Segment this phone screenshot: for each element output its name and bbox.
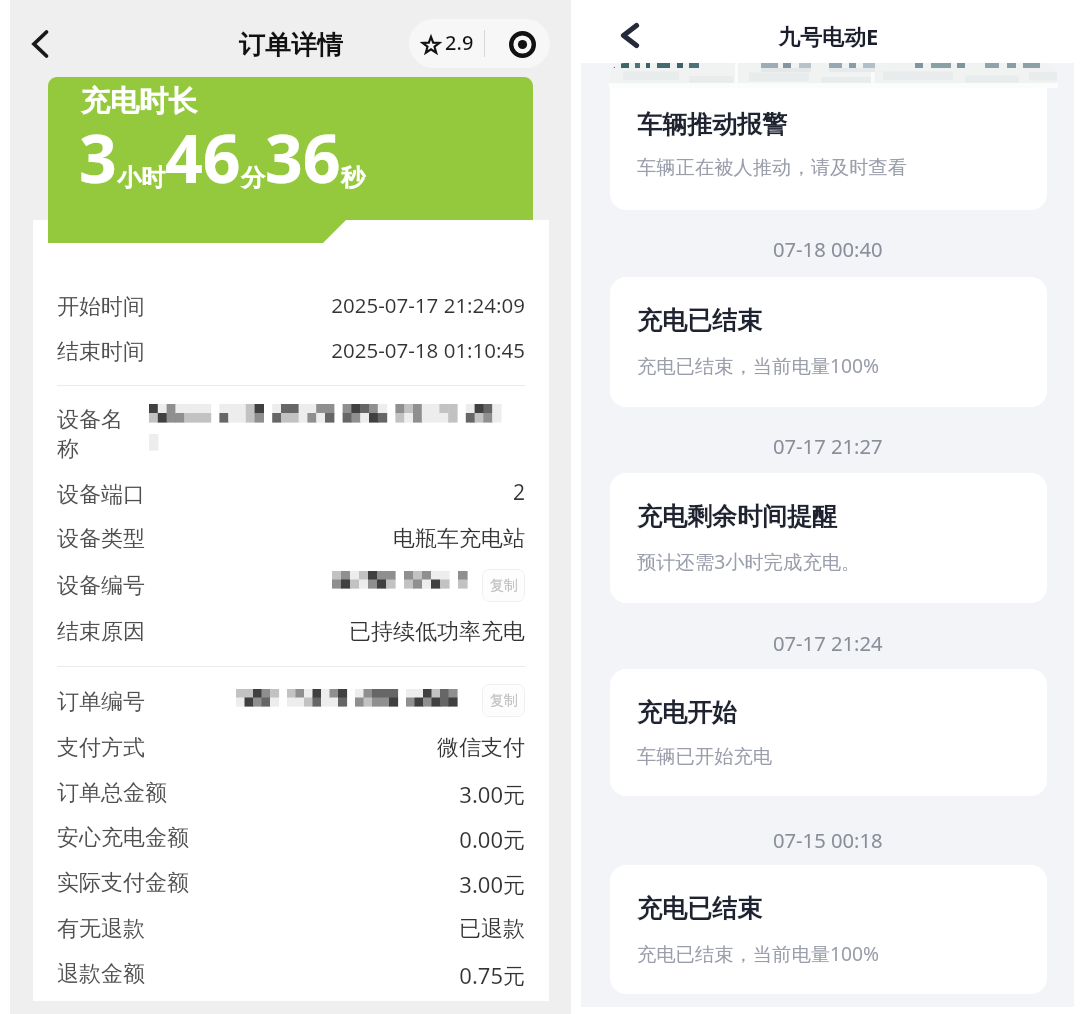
staticText: 预计还需3小时完成充电。: [637, 548, 861, 574]
staticText: 订单编号: [57, 688, 145, 716]
staticText: 07-17 21:27: [773, 432, 883, 460]
staticText: 07-17 21:24: [773, 629, 883, 657]
staticText: 充电时长: [81, 83, 197, 120]
staticText: 微信支付: [105, 734, 525, 762]
staticText: 复制: [490, 692, 518, 710]
staticText: 设备编号: [57, 572, 145, 600]
button[interactable]: [610, 473, 1047, 603]
staticText: 结束时间: [57, 338, 145, 366]
staticText: 秒: [341, 163, 365, 193]
staticText: 3.00元: [105, 779, 525, 809]
staticText: 3.00元: [105, 869, 525, 899]
staticText: 分: [241, 163, 265, 193]
staticText: 已持续低功率充电: [105, 618, 525, 646]
staticText: 订单详情: [239, 29, 343, 62]
staticText: 订单总金额: [57, 779, 167, 807]
staticText: 退款金额: [57, 960, 145, 988]
staticText: 复制: [490, 577, 518, 595]
staticText: 结束原因: [57, 618, 145, 646]
button[interactable]: [610, 277, 1047, 407]
staticText: 3: [79, 112, 117, 202]
staticText: 称: [57, 435, 79, 463]
staticText: 电瓶车充电站: [105, 525, 525, 553]
staticText: 有无退款: [57, 915, 145, 943]
staticText: 支付方式: [57, 734, 145, 762]
button[interactable]: 复制: [482, 569, 525, 602]
staticText: 36: [265, 112, 341, 202]
staticText: 车辆推动报警: [637, 109, 787, 140]
staticText: 2: [105, 478, 525, 507]
staticText: 充电已结束，当前电量100%: [637, 940, 880, 966]
staticText: 设备端口: [57, 481, 145, 509]
staticText: 2.9: [445, 29, 474, 56]
staticText: 安心充电金额: [57, 824, 189, 852]
staticText: 充电开始: [637, 697, 737, 728]
staticText: 九号电动E: [778, 21, 879, 51]
button[interactable]: [610, 64, 1047, 210]
button[interactable]: [610, 865, 1047, 994]
staticText: 0.75元: [105, 960, 525, 990]
button[interactable]: [610, 669, 1047, 796]
button[interactable]: Back: [607, 12, 651, 56]
staticText: 车辆正在被人推动，请及时查看: [637, 155, 908, 179]
staticText: 已退款: [105, 915, 525, 943]
staticText: 充电已结束: [637, 893, 762, 924]
button[interactable]: Back: [18, 22, 62, 66]
staticText: 充电已结束: [637, 305, 762, 336]
staticText: 07-15 00:18: [773, 826, 883, 854]
staticText: 0.00元: [105, 824, 525, 854]
staticText: 46: [165, 112, 241, 202]
button[interactable]: 复制: [482, 684, 525, 717]
staticText: 07-18 00:40: [773, 235, 883, 263]
staticText: 设备类型: [57, 525, 145, 553]
button[interactable]: Mini program menu: [409, 19, 550, 68]
staticText: 充电剩余时间提醒: [637, 501, 837, 532]
staticText: 实际支付金额: [57, 869, 189, 897]
staticText: 设备名: [57, 406, 123, 434]
staticText: 充电已结束，当前电量100%: [637, 352, 880, 378]
staticText: 2025-07-18 01:10:45: [105, 336, 525, 364]
staticText: 小时: [117, 163, 165, 193]
staticText: 2025-07-17 21:24:09: [105, 291, 525, 319]
staticText: 车辆已开始充电: [637, 744, 773, 768]
staticText: 开始时间: [57, 293, 145, 321]
